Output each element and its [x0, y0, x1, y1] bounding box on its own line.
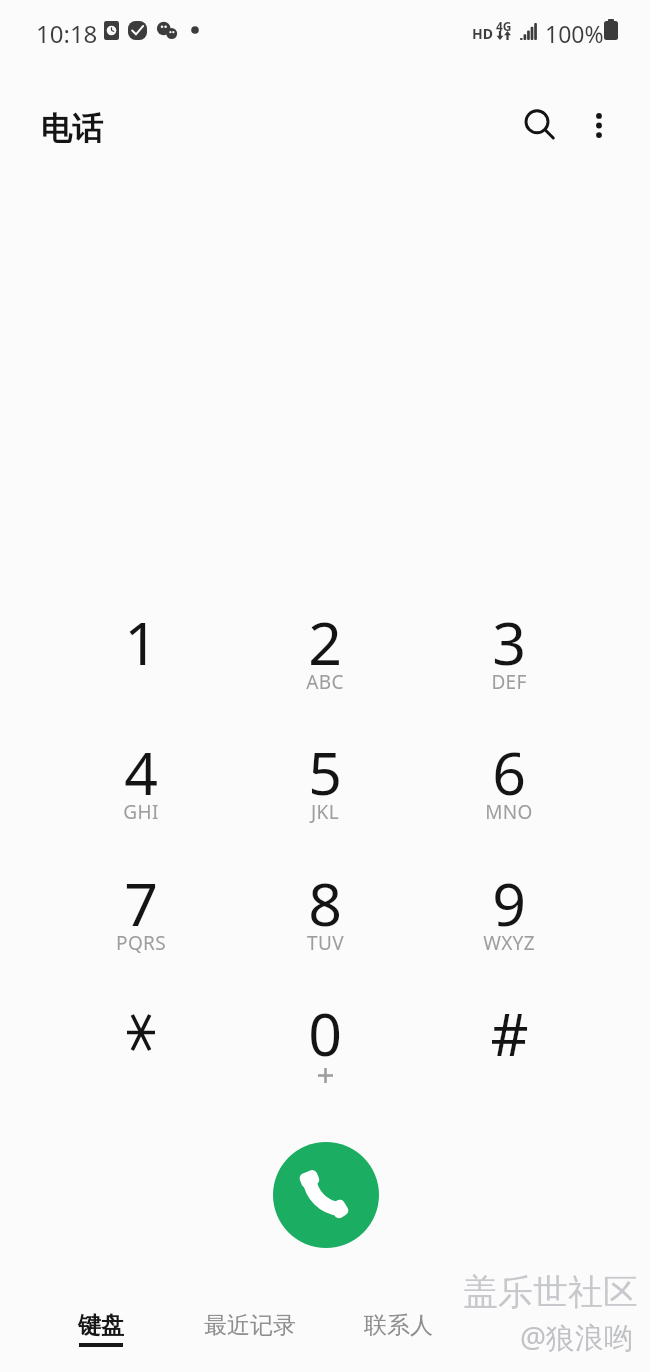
button[interactable]: 9 — [417, 853, 601, 971]
button[interactable]: 键盘 — [27, 1296, 175, 1358]
button[interactable]: 5 — [233, 722, 417, 840]
staticText: GHI — [123, 799, 159, 825]
staticText: MNO — [485, 799, 533, 825]
staticText: # — [490, 993, 529, 1073]
staticText: HD — [472, 24, 493, 43]
button[interactable]: 7 — [49, 853, 233, 971]
button[interactable]: 3 — [417, 592, 601, 710]
button[interactable]: Search — [512, 97, 568, 153]
staticText: 盖乐世社区 — [463, 1270, 638, 1314]
staticText: 7 — [124, 863, 158, 943]
staticText: 键盘 — [78, 1311, 124, 1340]
staticText: 2 — [308, 602, 342, 682]
staticText: 电话 — [41, 109, 103, 148]
staticText: 最近记录 — [204, 1311, 296, 1340]
staticText: 1 — [124, 602, 158, 682]
button[interactable]: 2 — [233, 592, 417, 710]
staticText: JKL — [311, 799, 339, 825]
staticText: 5 — [308, 732, 342, 812]
staticText: 联系人 — [364, 1311, 433, 1340]
staticText: TUV — [307, 930, 344, 956]
button[interactable]: 0 — [233, 983, 417, 1101]
staticText: 9 — [492, 863, 526, 943]
button[interactable]: # — [417, 983, 601, 1101]
button[interactable]: 4 — [49, 722, 233, 840]
button[interactable]: 联系人 — [324, 1296, 472, 1358]
staticText: ABC — [306, 669, 344, 695]
staticText: 10:18 — [36, 17, 98, 50]
button[interactable]: 6 — [417, 722, 601, 840]
button[interactable]: Call — [273, 1142, 379, 1248]
staticText: 0 — [308, 993, 342, 1073]
button[interactable]: More options — [571, 97, 627, 153]
staticText: 6 — [492, 732, 526, 812]
staticText: 4G — [496, 18, 512, 34]
staticText: 100% — [545, 18, 604, 49]
button[interactable]: 8 — [233, 853, 417, 971]
staticText: WXYZ — [483, 930, 535, 956]
button[interactable] — [49, 983, 233, 1101]
button[interactable]: 最近记录 — [176, 1296, 324, 1358]
staticText: 3 — [492, 602, 526, 682]
staticText: @狼浪哟 — [520, 1317, 634, 1357]
staticText: DEF — [491, 669, 527, 695]
staticText: 8 — [308, 863, 342, 943]
button[interactable]: 1 — [49, 592, 233, 710]
staticText: PQRS — [116, 930, 166, 956]
staticText: 4 — [124, 732, 158, 812]
